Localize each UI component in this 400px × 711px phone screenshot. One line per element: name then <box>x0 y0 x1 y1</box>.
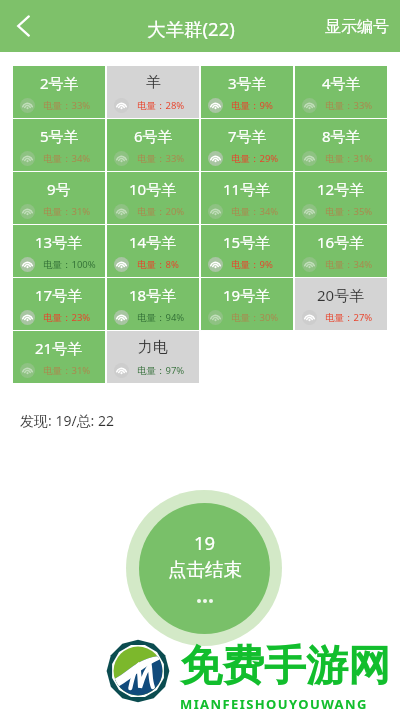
button[interactable]: 7号羊 <box>201 119 293 171</box>
staticText: 电量：33% <box>137 152 185 165</box>
staticText: 14号羊 <box>129 232 177 252</box>
staticText: 电量：35% <box>325 205 373 218</box>
button[interactable]: 20号羊 <box>295 278 387 330</box>
button[interactable]: 14号羊 <box>107 225 199 277</box>
button[interactable]: 19号羊 <box>201 278 293 330</box>
staticText: 2号羊 <box>40 73 79 93</box>
staticText: 电量：33% <box>43 99 91 112</box>
button[interactable]: 11号羊 <box>201 172 293 224</box>
staticText: 12号羊 <box>317 179 365 199</box>
staticText: 力电 <box>138 338 168 357</box>
button[interactable]: 5号羊 <box>13 119 105 171</box>
button[interactable]: 9号 <box>13 172 105 224</box>
staticText: 点击结束 <box>168 558 242 581</box>
staticText: 电量：34% <box>43 152 91 165</box>
staticText: 显示编号 <box>325 17 389 37</box>
staticText: 电量：29% <box>231 152 279 165</box>
staticText: 4号羊 <box>322 73 361 93</box>
button[interactable]: 返回 <box>0 2 48 50</box>
staticText: 电量：28% <box>137 99 185 112</box>
button[interactable]: 19 <box>139 503 270 634</box>
staticText: 电量：9% <box>231 99 273 112</box>
staticText: 电量：30% <box>231 311 279 324</box>
staticText: 9号 <box>47 179 71 199</box>
staticText: 11号羊 <box>223 179 271 199</box>
staticText: 5号羊 <box>40 126 79 146</box>
staticText: 16号羊 <box>317 232 365 252</box>
button[interactable]: 18号羊 <box>107 278 199 330</box>
staticText: 电量：94% <box>137 311 185 324</box>
staticText: 电量：27% <box>325 311 373 324</box>
staticText: 18号羊 <box>129 285 177 305</box>
button[interactable]: 10号羊 <box>107 172 199 224</box>
staticText: 8号羊 <box>322 126 361 146</box>
button[interactable]: 21号羊 <box>13 331 105 383</box>
staticText: 电量：31% <box>43 205 91 218</box>
staticText: 电量：100% <box>43 258 96 271</box>
button[interactable]: 6号羊 <box>107 119 199 171</box>
button[interactable]: 2号羊 <box>13 66 105 118</box>
staticText: 电量：31% <box>43 364 91 377</box>
staticText: 21号羊 <box>35 338 83 358</box>
staticText: 19 <box>194 530 216 555</box>
staticText: 电量：33% <box>325 99 373 112</box>
staticText: MIANFEISHOUYOUWANG <box>180 695 368 711</box>
staticText: 电量：31% <box>325 152 373 165</box>
staticText: 电量：8% <box>137 258 179 271</box>
staticText: 电量：34% <box>231 205 279 218</box>
staticText: 7号羊 <box>228 126 267 146</box>
staticText: 6号羊 <box>134 126 173 146</box>
staticText: 电量：34% <box>325 258 373 271</box>
staticText: 19号羊 <box>223 285 271 305</box>
button[interactable]: 12号羊 <box>295 172 387 224</box>
staticText: 免费手游网 <box>180 640 390 693</box>
staticText: 大羊群(22) <box>147 16 235 41</box>
staticText: 13号羊 <box>35 232 83 252</box>
button[interactable]: 15号羊 <box>201 225 293 277</box>
staticText: 15号羊 <box>223 232 271 252</box>
button[interactable]: 16号羊 <box>295 225 387 277</box>
staticText: 10号羊 <box>129 179 177 199</box>
staticText: 羊 <box>146 73 161 92</box>
staticText: 3号羊 <box>228 73 267 93</box>
staticText: 电量：20% <box>137 205 185 218</box>
button[interactable]: 8号羊 <box>295 119 387 171</box>
button[interactable]: 力电 <box>107 331 199 383</box>
button[interactable]: 显示编号 <box>325 17 389 37</box>
staticText: 电量：9% <box>231 258 273 271</box>
button[interactable]: 3号羊 <box>201 66 293 118</box>
staticText: 17号羊 <box>35 285 83 305</box>
staticText: 发现: 19/总: 22 <box>20 411 115 430</box>
button[interactable]: 13号羊 <box>13 225 105 277</box>
button[interactable]: 4号羊 <box>295 66 387 118</box>
button[interactable]: 羊 <box>107 66 199 118</box>
staticText: 电量：23% <box>43 311 91 324</box>
staticText: 20号羊 <box>317 285 365 305</box>
button[interactable]: 17号羊 <box>13 278 105 330</box>
staticText: 电量：97% <box>137 364 185 377</box>
